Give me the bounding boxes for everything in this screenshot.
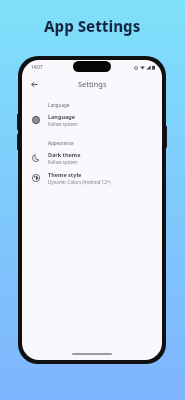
staticText: Language bbox=[48, 113, 76, 120]
button[interactable]: Back bbox=[27, 77, 41, 91]
staticText: Theme style bbox=[48, 171, 82, 178]
button[interactable]: Language bbox=[22, 110, 162, 130]
staticText: Appearance bbox=[48, 140, 74, 146]
button[interactable]: Theme style bbox=[22, 168, 162, 188]
staticText: Follow system bbox=[48, 159, 78, 165]
staticText: Dark theme bbox=[48, 151, 81, 158]
staticText: Dynamic Colors (Android 12+) bbox=[48, 179, 111, 185]
button[interactable]: Dark theme bbox=[22, 148, 162, 168]
staticText: Follow system bbox=[48, 121, 78, 127]
staticText: 14:07 bbox=[31, 64, 43, 70]
staticText: Language bbox=[48, 102, 70, 108]
staticText: App Settings bbox=[44, 16, 141, 36]
staticText: Settings bbox=[78, 79, 107, 89]
